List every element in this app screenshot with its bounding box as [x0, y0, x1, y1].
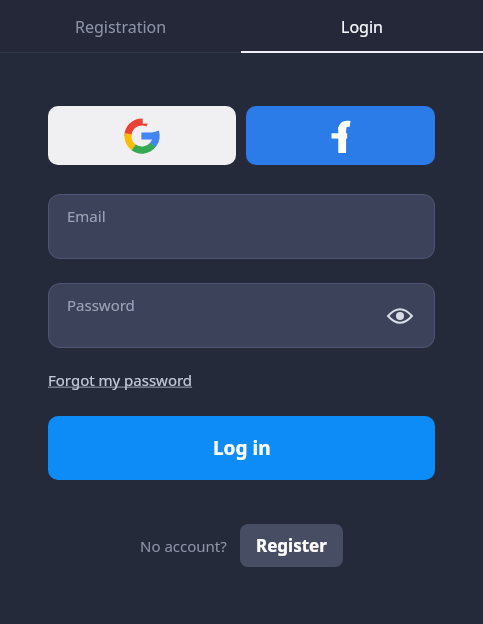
staticText: Forgot my password — [48, 370, 193, 390]
staticText: Register — [256, 534, 327, 557]
staticText: Registration — [75, 16, 167, 38]
button[interactable]: Password — [48, 283, 435, 348]
button[interactable]: Show password — [385, 301, 415, 331]
staticText: Password — [67, 295, 135, 315]
button[interactable]: Sign in with Google — [48, 106, 236, 165]
button[interactable]: Sign in with Facebook — [246, 106, 435, 165]
button[interactable]: Forgot my password — [48, 370, 193, 390]
staticText: Log in — [213, 435, 271, 461]
button[interactable]: Login — [241, 0, 483, 53]
button[interactable]: Register — [240, 524, 343, 567]
staticText: Login — [341, 16, 383, 38]
staticText: Email — [67, 206, 106, 226]
button[interactable]: Log in — [48, 416, 435, 480]
staticText: No account? — [140, 536, 227, 556]
button[interactable]: Email — [48, 194, 435, 259]
button[interactable]: Registration — [0, 0, 241, 53]
